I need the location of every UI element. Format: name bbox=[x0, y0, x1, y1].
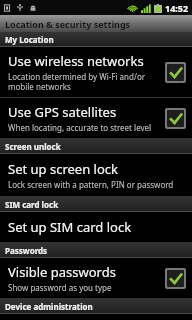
staticText: 14:52 bbox=[165, 2, 189, 14]
staticText: Use wireless networks bbox=[8, 52, 144, 70]
staticText: When locating, accurate to street level bbox=[8, 122, 152, 133]
button[interactable]: Use wireless networks bbox=[0, 47, 192, 97]
staticText: My Location bbox=[5, 34, 54, 45]
staticText: Passwords bbox=[5, 245, 48, 256]
staticText: Location & security settings bbox=[5, 18, 131, 30]
button[interactable]: Set up screen lock bbox=[0, 154, 192, 196]
staticText: Set up SIM card lock bbox=[8, 218, 132, 236]
staticText: Lock screen with a pattern, PIN or passw… bbox=[8, 179, 174, 190]
staticText: Use GPS satellites bbox=[8, 103, 117, 121]
staticText: Set up screen lock bbox=[8, 160, 119, 178]
button[interactable]: Set up SIM card lock bbox=[0, 212, 192, 242]
staticText: Visible passwords bbox=[8, 263, 116, 281]
staticText: Show password as you type bbox=[8, 282, 112, 293]
button[interactable]: Toggle setting bbox=[167, 270, 184, 287]
button[interactable]: Toggle setting bbox=[167, 64, 184, 81]
button[interactable]: Use GPS satellites bbox=[0, 98, 192, 138]
button[interactable]: Toggle setting bbox=[167, 110, 184, 127]
staticText: Screen unlock bbox=[5, 141, 61, 152]
button[interactable]: Visible passwords bbox=[0, 258, 192, 298]
staticText: SIM card lock bbox=[5, 199, 59, 210]
staticText: Device administration bbox=[5, 301, 93, 312]
staticText: Location determined by Wi-Fi and/or mobi… bbox=[8, 71, 146, 92]
